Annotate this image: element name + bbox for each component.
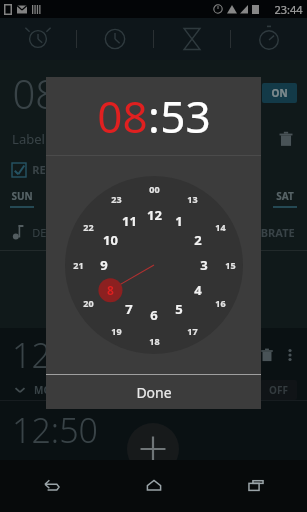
staticText: Done	[136, 383, 172, 402]
button[interactable]: Collapse	[143, 255, 165, 277]
staticText: 13	[187, 193, 198, 205]
button[interactable]: 21	[73, 259, 84, 271]
button[interactable]: 17	[187, 325, 198, 337]
button[interactable]: 11	[122, 212, 137, 230]
staticText: WED	[144, 189, 167, 203]
staticText: OFF	[269, 383, 288, 397]
staticText: 1	[175, 212, 183, 230]
button[interactable]: 16	[215, 297, 226, 309]
staticText: SUN	[11, 189, 33, 203]
staticText: 23	[111, 193, 122, 205]
staticText: 19	[111, 325, 122, 337]
button[interactable]: Recents	[205, 460, 307, 512]
staticText: DEFAULT	[32, 225, 79, 240]
staticText: 12:50	[12, 407, 98, 453]
staticText: 12:40	[12, 332, 98, 378]
staticText: 7	[125, 300, 133, 318]
button[interactable]: 10	[103, 231, 118, 249]
button[interactable]: Home	[103, 460, 205, 512]
button[interactable]: SAT	[273, 189, 297, 208]
button[interactable]: Alarm	[0, 18, 76, 60]
staticText: 11	[122, 212, 137, 230]
button[interactable]: 1	[175, 212, 183, 230]
button[interactable]: 6	[150, 306, 158, 324]
staticText: 53	[160, 86, 211, 146]
button[interactable]: Done	[46, 375, 261, 409]
button[interactable]: Delete	[259, 347, 275, 363]
staticText: 20	[83, 297, 94, 309]
staticText: 17	[187, 325, 198, 337]
staticText: 22	[83, 221, 94, 233]
staticText: 15	[225, 259, 236, 271]
staticText: ON	[271, 86, 288, 100]
button[interactable]	[12, 163, 26, 177]
button[interactable]: 8	[107, 282, 114, 298]
staticText: SAT	[276, 189, 294, 203]
staticText: MON, TUE	[34, 383, 84, 397]
staticText: 12	[147, 206, 162, 224]
button[interactable]: 18	[149, 335, 160, 347]
staticText: 08:53	[12, 66, 114, 120]
button[interactable]: 19	[111, 325, 122, 337]
button[interactable]: THU	[186, 189, 210, 208]
staticText: VIBRATE	[249, 225, 295, 240]
button[interactable]: 9	[100, 256, 108, 274]
button[interactable]: 15	[225, 259, 236, 271]
button[interactable]: Clock	[77, 18, 153, 60]
button[interactable]: 22	[83, 221, 94, 233]
staticText: 4	[194, 281, 202, 299]
button[interactable]: 20	[83, 297, 94, 309]
staticText: 18	[149, 335, 160, 347]
staticText: 10	[103, 231, 118, 249]
button[interactable]: 7	[125, 300, 133, 318]
button[interactable]: SUN	[10, 189, 34, 208]
button[interactable]: 2	[194, 231, 202, 249]
button[interactable]: Expand	[12, 382, 28, 398]
button[interactable]: 14	[215, 221, 226, 233]
staticText: 6	[150, 306, 158, 324]
staticText: 21	[73, 259, 84, 271]
staticText: 16	[215, 297, 226, 309]
button[interactable]: Stopwatch	[231, 18, 307, 60]
button[interactable]: 4	[194, 281, 202, 299]
button[interactable]: 5	[175, 300, 183, 318]
button[interactable]: Add alarm	[127, 423, 179, 475]
staticText: 9	[100, 256, 108, 274]
button[interactable]: Back	[0, 460, 103, 512]
staticText: 3	[200, 256, 208, 274]
staticText: Label	[12, 130, 45, 148]
staticText: 00	[149, 183, 160, 195]
button[interactable]: 13	[187, 193, 198, 205]
button[interactable]: 23	[111, 193, 122, 205]
staticText: REPEAT	[32, 162, 72, 177]
button[interactable]: WED	[143, 189, 167, 208]
staticText: 23:44	[274, 2, 303, 17]
staticText: 5	[175, 300, 183, 318]
button[interactable]: Delete	[277, 130, 295, 148]
button[interactable]: More options	[283, 346, 297, 364]
staticText: 08	[97, 86, 148, 146]
button[interactable]: TUE	[99, 189, 123, 208]
button[interactable]: Timer	[154, 18, 230, 60]
button[interactable]: OFF	[269, 383, 288, 397]
staticText: THU	[188, 189, 209, 203]
button[interactable]: 3	[200, 256, 208, 274]
button[interactable]: ON	[271, 86, 288, 100]
staticText: 14	[215, 221, 226, 233]
button[interactable]: 12	[147, 206, 162, 224]
staticText: 2	[194, 231, 202, 249]
button[interactable]: 00	[149, 183, 160, 195]
staticText: TUE	[102, 189, 121, 203]
staticText: 8	[107, 282, 114, 298]
staticText: :	[148, 86, 160, 146]
